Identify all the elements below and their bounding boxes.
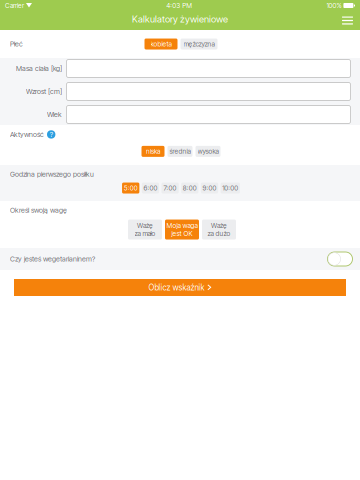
button[interactable]: Czy jesteś wegetarianinem [325,249,355,269]
staticText: Wzrost [cm] [26,87,62,96]
staticText: Określ swoją wagę [10,206,67,214]
staticText: Godzina pierwszego posiłku [10,170,94,178]
button[interactable]: wysoka [195,146,220,157]
button[interactable]: Oblicz wskaźnik [14,279,346,296]
staticText: Moja waga [166,221,197,230]
staticText: Masa ciała [kg] [16,64,62,73]
staticText: Kalkulatory żywieniowe [132,13,228,25]
staticText: jest OK [171,229,192,238]
button[interactable]: 7:00 [161,182,179,193]
staticText: Carrier [5,1,24,10]
button[interactable]: kobieta [144,38,177,49]
staticText: mężczyzna [183,40,214,48]
staticText: 100% [326,1,341,10]
staticText: kobieta [150,40,171,48]
staticText: Oblicz wskaźnik [148,283,204,292]
button[interactable]: 8:00 [181,182,198,193]
staticText: 10:00 [222,184,238,192]
button[interactable]: Ważę [202,219,236,239]
staticText: 7:00 [164,184,177,192]
staticText: 8:00 [183,184,197,192]
button[interactable]: 9:00 [201,182,218,193]
staticText: Czy jesteś wegetarianinem? [10,255,95,263]
button[interactable]: Menu [335,11,360,30]
staticText: ? [50,130,53,139]
button[interactable]: Moja waga [165,219,199,239]
staticText: 5:00 [124,184,138,192]
button[interactable]: średnia [167,146,192,157]
button[interactable]: mężczyzna [180,38,217,49]
staticText: 4:03 PM [166,1,192,10]
button[interactable]: 10:00 [221,182,240,193]
staticText: za mało [134,229,155,238]
staticText: Ważę [211,221,227,230]
staticText: 6:00 [143,184,157,192]
staticText: 9:00 [202,184,216,192]
staticText: Aktywność [10,130,44,139]
button[interactable]: 6:00 [142,182,159,193]
staticText: Płeć [10,40,23,48]
button[interactable]: 5:00 [122,182,139,193]
button[interactable]: Ważę [128,219,162,239]
staticText: Wiek [47,110,62,119]
staticText: Ważę [137,221,153,230]
staticText: za dużo [207,229,230,238]
button[interactable]: niska [141,146,164,157]
staticText: średnia [169,147,190,155]
staticText: niska [146,147,160,155]
staticText: wysoka [197,147,218,155]
